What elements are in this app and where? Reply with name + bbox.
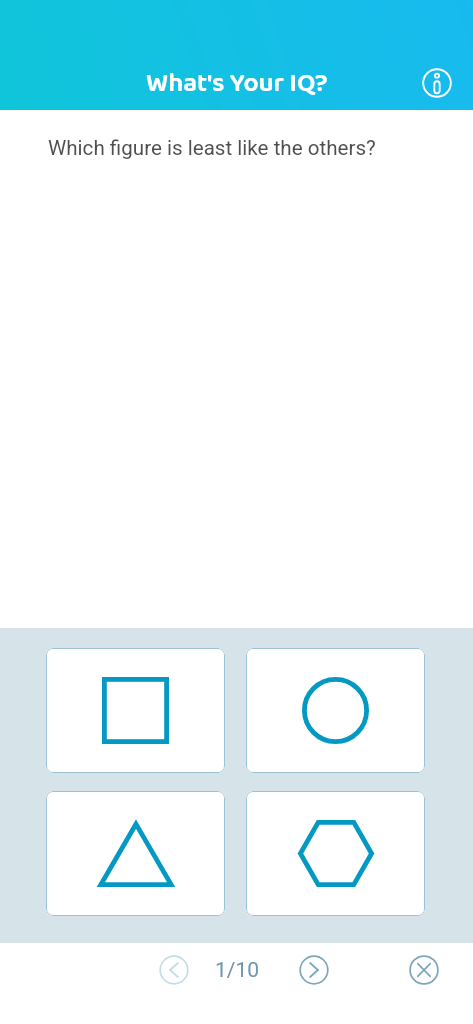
button[interactable]: Triangle [46, 791, 225, 916]
staticText: 1/10 [215, 958, 260, 983]
staticText: What's Your IQ? [146, 62, 328, 105]
button[interactable]: Previous question [154, 950, 194, 990]
button[interactable]: Hexagon [246, 791, 425, 916]
button[interactable]: Next question [294, 950, 334, 990]
button[interactable]: Info [417, 63, 457, 103]
button[interactable]: Circle [246, 648, 425, 773]
staticText: Which figure is least like the others? [48, 136, 376, 160]
button[interactable]: Close quiz [404, 950, 444, 990]
button[interactable]: Square [46, 648, 225, 773]
